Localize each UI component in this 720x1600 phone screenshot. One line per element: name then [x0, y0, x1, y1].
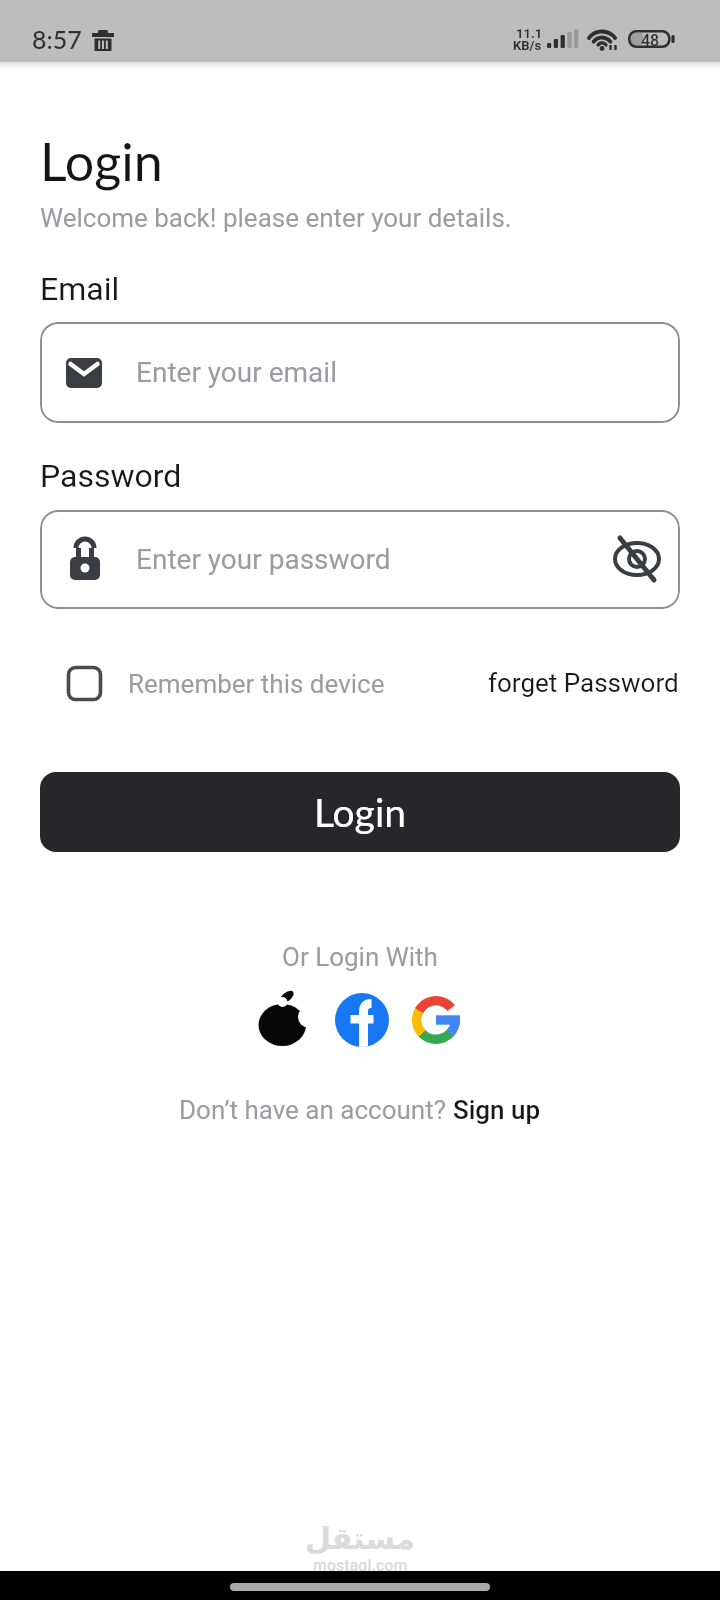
staticText: Welcome back! please enter your details.: [40, 203, 512, 233]
button[interactable]: [256, 991, 310, 1047]
staticText: Enter your email: [136, 356, 337, 389]
staticText: 11.1: [516, 26, 543, 41]
button[interactable]: Enter your password: [40, 510, 680, 609]
staticText: Password: [40, 457, 182, 495]
button[interactable]: Sign up: [453, 1095, 541, 1125]
button[interactable]: Enter your email: [40, 322, 680, 423]
staticText: Enter your password: [136, 543, 391, 576]
staticText: Login: [314, 789, 407, 836]
staticText: Or Login With: [282, 942, 438, 972]
button[interactable]: [335, 993, 389, 1047]
staticText: 8:57: [32, 24, 82, 54]
staticText: Don’t have an account?: [179, 1095, 453, 1125]
button[interactable]: forget Password: [488, 668, 679, 698]
button[interactable]: Remember this device: [66, 665, 385, 702]
button[interactable]: [602, 524, 672, 594]
staticText: Remember this device: [128, 669, 385, 699]
staticText: KB/s: [513, 38, 542, 53]
staticText: Email: [40, 270, 120, 308]
button[interactable]: [412, 996, 460, 1044]
staticText: مستقل: [305, 1521, 415, 1556]
button[interactable]: Login: [40, 772, 680, 852]
staticText: Login: [40, 130, 163, 192]
staticText: mostaql.com: [313, 1556, 408, 1575]
staticText: 48: [641, 31, 660, 50]
